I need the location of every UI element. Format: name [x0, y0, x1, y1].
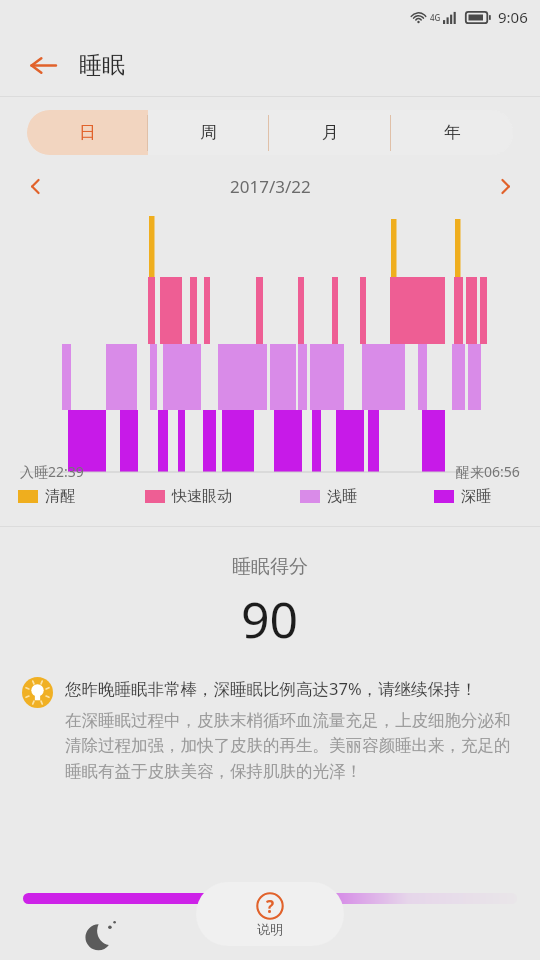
- staticText: 浅睡: [327, 487, 357, 506]
- staticText: 年: [444, 122, 461, 143]
- staticText: 在深睡眠过程中，皮肤末梢循环血流量充足，上皮细胞分泌和清除过程加强，加快了皮肤的…: [65, 710, 516, 782]
- button[interactable]: 周: [148, 110, 269, 155]
- staticText: 醒来06:56: [456, 462, 520, 481]
- button[interactable]: Back: [22, 44, 64, 86]
- staticText: 月: [322, 122, 339, 143]
- staticText: 4G: [430, 12, 441, 23]
- staticText: ?: [266, 895, 275, 918]
- staticText: 说明: [257, 921, 283, 937]
- staticText: 入睡22:39: [20, 462, 84, 481]
- staticText: 周: [200, 122, 217, 143]
- staticText: 清醒: [45, 487, 75, 506]
- staticText: 睡眠: [79, 51, 125, 80]
- staticText: 快速眼动: [172, 487, 232, 506]
- button[interactable]: Previous day: [18, 169, 52, 203]
- button[interactable]: 日: [27, 110, 148, 155]
- staticText: 深睡: [461, 487, 491, 506]
- button[interactable]: ?: [196, 882, 344, 946]
- staticText: 9:06: [498, 7, 528, 27]
- button[interactable]: 年: [391, 110, 513, 155]
- button[interactable]: Next day: [488, 169, 522, 203]
- staticText: 90: [241, 585, 299, 653]
- staticText: 您昨晚睡眠非常棒，深睡眠比例高达37%，请继续保持！: [65, 677, 478, 700]
- staticText: 睡眠得分: [232, 555, 308, 579]
- button[interactable]: 月: [269, 110, 391, 155]
- staticText: 日: [79, 122, 96, 143]
- staticText: 2017/3/22: [230, 175, 311, 198]
- button[interactable]: Sleep: [75, 906, 129, 960]
